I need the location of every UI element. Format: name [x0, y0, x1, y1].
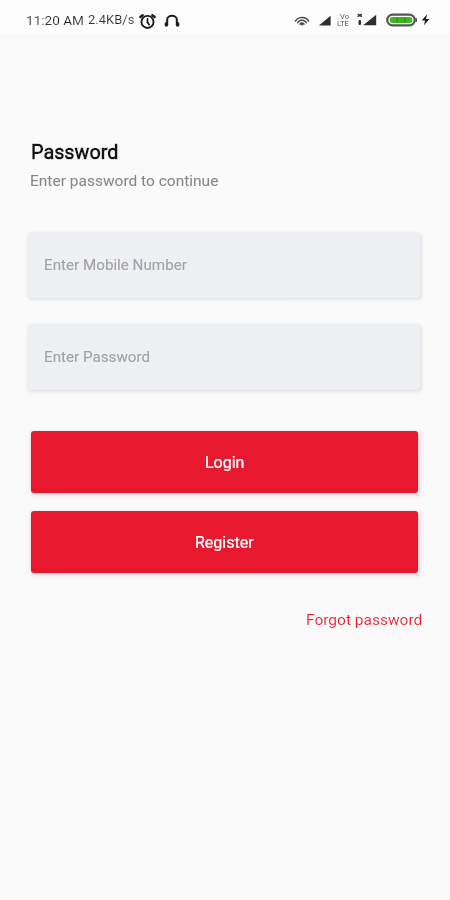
button[interactable]: Register: [31, 511, 418, 573]
button[interactable]: Login: [31, 431, 418, 493]
other: VoLTE: [336, 12, 351, 28]
staticText: Login: [205, 453, 245, 472]
staticText: Password: [31, 141, 119, 164]
other: Alarm: [139, 12, 156, 28]
staticText: Enter Mobile Number: [44, 256, 187, 274]
staticText: 2.4KB/s: [88, 12, 135, 27]
other: Headset: [164, 13, 180, 28]
other: Signal: [318, 14, 332, 27]
button[interactable]: Enter Mobile Number: [28, 232, 420, 298]
staticText: Register: [195, 533, 254, 552]
staticText: 11:20 AM: [26, 12, 84, 28]
staticText: Vo: [340, 12, 349, 21]
staticText: Forgot password: [306, 611, 423, 629]
button[interactable]: Enter Password: [28, 324, 420, 390]
staticText: Enter Password: [44, 348, 151, 366]
other: Battery: [386, 13, 416, 27]
other: Charging: [420, 12, 431, 27]
staticText: Enter password to continue: [30, 172, 219, 190]
staticText: LTE: [337, 19, 349, 28]
other: Signal 2: [356, 13, 377, 27]
button[interactable]: Forgot password: [294, 605, 435, 635]
other: Wi-Fi: [294, 14, 310, 27]
